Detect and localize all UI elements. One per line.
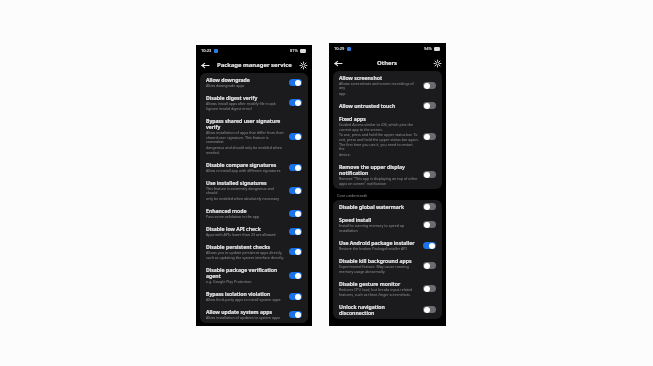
button[interactable]: Toggle [423, 262, 436, 269]
staticText: Allow update system apps [206, 308, 273, 315]
staticText: Package manager service [217, 61, 292, 69]
staticText: 81% [290, 48, 298, 53]
staticText: The first time you use it, you need to r… [339, 142, 419, 152]
button[interactable]: Toggle [423, 221, 436, 228]
button[interactable]: Disable compare signatures [200, 158, 308, 176]
staticText: features, such as three-finger screensho… [339, 292, 411, 297]
staticText: Disable kill background apps [339, 257, 412, 264]
staticText: Apps with APIs lower than 23 are allowed [206, 232, 276, 237]
staticText: Bypass shared user signature verify [206, 117, 285, 130]
button[interactable]: Settings [432, 58, 442, 68]
button[interactable]: Bypass shared user signature verify [200, 114, 308, 158]
staticText: such as updating the system interface di… [206, 255, 285, 260]
button[interactable]: Unlock navigation disconnection [333, 300, 442, 319]
staticText: Allow screenshot [339, 74, 383, 81]
button[interactable]: Toggle [289, 99, 302, 106]
staticText: Speed install [339, 216, 372, 223]
staticText: Install to running memory to speed up [339, 223, 405, 228]
staticText: memory usage abnormally. [339, 269, 386, 274]
staticText: Restore the broken PackageInstaller API [339, 246, 407, 251]
button[interactable]: Use Android package installer [333, 236, 442, 254]
button[interactable]: Use installed signatures [200, 176, 308, 204]
staticText: Allow third-party apps to install system… [206, 297, 281, 302]
staticText: Allows screenshots and screen recordings… [339, 81, 419, 91]
button[interactable]: Toggle [289, 164, 302, 171]
button[interactable]: Enhanced mode [200, 204, 308, 222]
button[interactable]: Toggle [289, 272, 302, 279]
button[interactable]: Toggle [423, 242, 436, 249]
button[interactable]: Disable persistent checks [200, 240, 308, 263]
staticText: Bypass isolation violation [206, 290, 271, 297]
staticText: Allow downgrade apps [206, 83, 245, 88]
button[interactable]: Disable kill background apps [333, 254, 442, 277]
button[interactable]: Toggle [289, 79, 302, 86]
staticText: Allow downgrade [206, 76, 250, 83]
staticText: 10:29 [334, 46, 345, 51]
button[interactable]: Disable gesture monitor [333, 277, 442, 300]
staticText: Allows you to update persistent apps dir… [206, 250, 283, 255]
button[interactable]: Toggle [289, 248, 302, 255]
staticText: current app to the screen. [339, 127, 383, 132]
button[interactable]: Disable digest verify [200, 91, 308, 114]
staticText: shared user signature. This feature is s… [206, 135, 285, 145]
button[interactable]: Toggle [423, 133, 436, 140]
staticText: Disable digest verify [206, 94, 258, 101]
staticText: Remove the upper display notification [339, 163, 419, 176]
button[interactable]: Remove the upper display notification [333, 160, 442, 189]
button[interactable]: Allow downgrade [200, 73, 308, 91]
button[interactable]: Settings [298, 60, 308, 70]
button[interactable]: Speed install [333, 213, 442, 236]
staticText: Fixed apps [339, 115, 366, 122]
staticText: Allow installation of apps that differ f… [206, 130, 284, 135]
button[interactable]: Toggle [423, 171, 436, 178]
staticText: app [339, 91, 346, 96]
staticText: dangerous and should only be enabled whe… [206, 145, 283, 150]
staticText: e.g. Google Play Protection [206, 279, 252, 284]
button[interactable]: Toggle [289, 133, 302, 140]
staticText: Allow re-install app with different sign… [206, 168, 281, 173]
button[interactable]: Back [333, 58, 343, 68]
staticText: (ignore invalid digest error) [206, 106, 252, 111]
button[interactable]: Toggle [423, 203, 436, 210]
staticText: Guided Access similar to iOS, which pins… [339, 122, 414, 127]
staticText: Use Android package installer [339, 239, 415, 246]
button[interactable]: Disable package verification agent [200, 263, 308, 287]
button[interactable]: Toggle [289, 311, 302, 318]
button[interactable]: Fixed apps [333, 112, 442, 160]
button[interactable]: Allow update system apps [200, 305, 308, 323]
staticText: apps on screen" notification [339, 181, 387, 186]
button[interactable]: Toggle [423, 82, 436, 89]
button[interactable]: Toggle [423, 306, 436, 313]
staticText: Others [377, 59, 398, 67]
staticText: To use, press and hold the upper status … [339, 132, 418, 137]
staticText: Allow installation of updates to system … [206, 315, 281, 320]
button[interactable]: Toggle [289, 293, 302, 300]
staticText: Disable global watermark [339, 203, 405, 210]
button[interactable]: Bypass isolation violation [200, 287, 308, 305]
staticText: Unlock navigation disconnection [339, 303, 419, 316]
button[interactable]: Disable global watermark [333, 200, 442, 213]
staticText: Disable compare signatures [206, 161, 277, 168]
button[interactable]: Back [200, 60, 210, 70]
staticText: installation [339, 228, 358, 233]
staticText: Disable persistent checks [206, 243, 271, 250]
button[interactable]: Toggle [423, 285, 436, 292]
staticText: Reduces CPU load, but breaks input-relat… [339, 287, 413, 292]
button[interactable]: Toggle [289, 228, 302, 235]
button[interactable]: Allow untrusted touch [333, 99, 442, 112]
button[interactable]: Disable low API check [200, 222, 308, 240]
staticText: Core underneath [337, 193, 368, 198]
staticText: Disable low API check [206, 225, 261, 232]
button[interactable]: Allow screenshot [333, 71, 442, 99]
staticText: exit, press and hold the upper status ba… [339, 137, 419, 142]
staticText: device. [339, 152, 351, 157]
button[interactable]: Toggle [423, 102, 436, 109]
button[interactable]: Toggle [289, 187, 302, 194]
staticText: This feature is extremely dangerous and … [206, 186, 285, 196]
staticText: Allow untrusted touch [339, 102, 396, 109]
staticText: Use installed signatures [206, 179, 267, 186]
staticText: 94% [424, 46, 432, 51]
staticText: Disable package verification agent [206, 266, 285, 279]
staticText: only be enabled when absolutely necessar… [206, 196, 280, 201]
button[interactable]: Toggle [289, 210, 302, 217]
